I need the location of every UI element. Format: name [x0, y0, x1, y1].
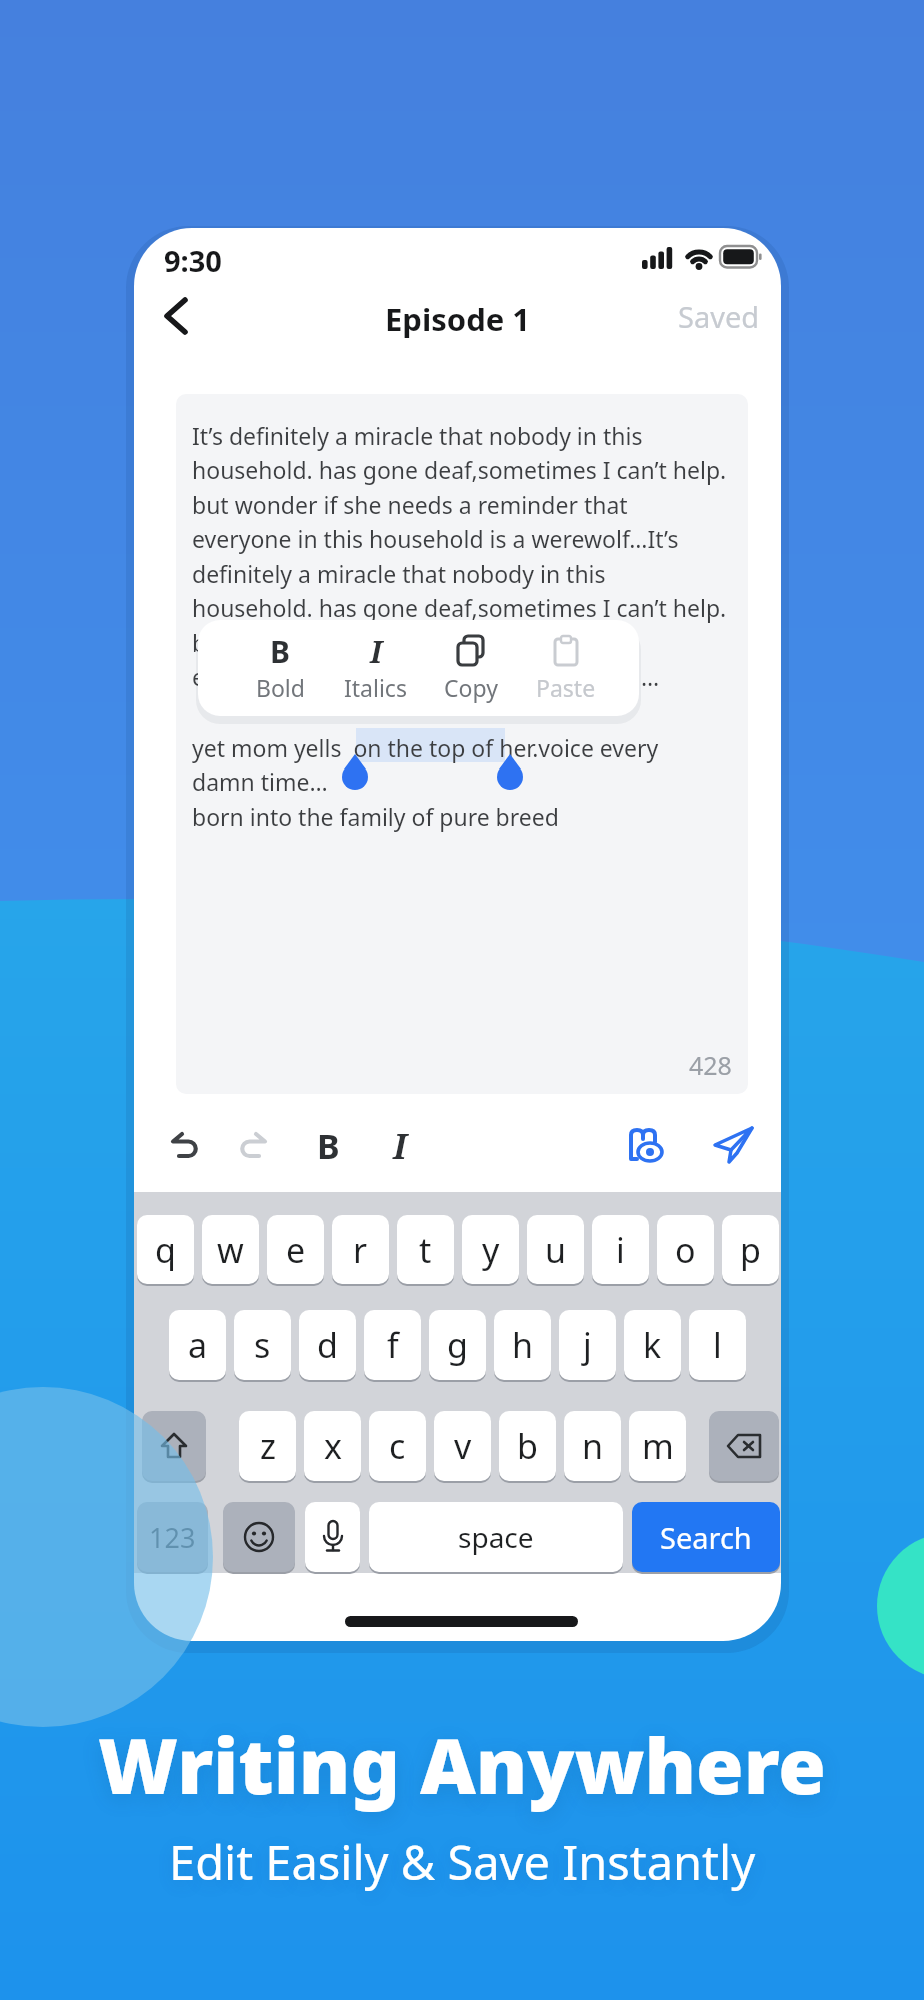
button[interactable]: l	[689, 1310, 746, 1380]
staticText: y	[482, 1227, 500, 1273]
staticText: a	[188, 1322, 208, 1368]
button[interactable]: Copy	[423, 630, 518, 716]
button[interactable]: Saved	[654, 294, 764, 338]
button[interactable]: h	[494, 1310, 551, 1380]
staticText: B	[317, 1123, 340, 1169]
button[interactable]	[223, 1502, 295, 1572]
staticText: Writing Anywhere	[98, 1712, 826, 1817]
button[interactable]: k	[624, 1310, 681, 1380]
button[interactable]: f	[364, 1310, 421, 1380]
button[interactable]: w	[202, 1215, 259, 1284]
staticText: o	[675, 1227, 696, 1273]
button[interactable]: g	[429, 1310, 486, 1380]
staticText: everyone in this household is a werewolf…	[192, 523, 679, 554]
button[interactable]	[229, 1120, 281, 1172]
button[interactable]: r	[332, 1215, 389, 1284]
staticText: u	[545, 1227, 567, 1273]
staticText: m	[642, 1423, 674, 1469]
staticText: B	[270, 631, 290, 672]
button[interactable]: B	[232, 630, 328, 716]
staticText: z	[260, 1423, 276, 1469]
staticText: Episode 1	[385, 298, 531, 340]
button[interactable]	[142, 1411, 206, 1481]
button[interactable]: v	[434, 1411, 491, 1481]
button[interactable]: o	[657, 1215, 714, 1284]
button[interactable]	[160, 1120, 212, 1172]
staticText: Paste	[536, 672, 596, 703]
staticText: 428	[689, 1048, 732, 1082]
staticText: l	[713, 1322, 722, 1368]
button[interactable]: i	[592, 1215, 649, 1284]
staticText: k	[643, 1322, 662, 1368]
button[interactable]: Search	[632, 1502, 780, 1572]
button[interactable]: I	[328, 630, 423, 716]
staticText: q	[155, 1227, 176, 1273]
button[interactable]: t	[397, 1215, 454, 1284]
staticText: household. has gone deaf,sometimes I can…	[192, 454, 727, 485]
staticText: b	[192, 627, 207, 658]
staticText: f	[387, 1322, 399, 1368]
staticText: 9:30	[164, 241, 222, 280]
button[interactable]: y	[462, 1215, 519, 1284]
staticText: Saved	[678, 297, 760, 336]
button[interactable]: I	[374, 1120, 426, 1172]
staticText: j	[583, 1322, 592, 1368]
button[interactable]: c	[369, 1411, 426, 1481]
button[interactable]: s	[234, 1310, 291, 1380]
staticText: household. has gone deaf,sometimes I can…	[192, 592, 727, 623]
button[interactable]: u	[527, 1215, 584, 1284]
staticText: e	[286, 1227, 306, 1273]
staticText: t	[419, 1227, 432, 1273]
staticText: g	[447, 1322, 468, 1368]
staticText: Bold	[256, 672, 305, 703]
button[interactable]: d	[299, 1310, 356, 1380]
staticText: damn time…	[192, 766, 328, 797]
button[interactable]: B	[302, 1120, 354, 1172]
staticText: h	[512, 1322, 534, 1368]
staticText: yet mom yells on the top of her.voice ev…	[192, 732, 659, 763]
button[interactable]: m	[629, 1411, 686, 1481]
staticText: n	[582, 1423, 604, 1469]
staticText: It’s definitely a miracle that nobody in…	[192, 420, 643, 451]
staticText: Edit Easily & Save Instantly	[169, 1830, 756, 1894]
staticText: w	[217, 1227, 244, 1273]
staticText: I	[393, 1123, 407, 1169]
staticText: e	[192, 661, 205, 692]
staticText: Copy	[444, 672, 498, 703]
button[interactable]: x	[304, 1411, 361, 1481]
button[interactable]	[706, 1118, 760, 1172]
staticText: v	[454, 1423, 472, 1469]
staticText: Search	[660, 1518, 752, 1557]
button[interactable]	[618, 1118, 672, 1172]
staticText: born into the family of pure breed	[192, 801, 559, 832]
staticText: Italics	[344, 672, 407, 703]
staticText: s	[254, 1322, 271, 1368]
button[interactable]: j	[559, 1310, 616, 1380]
button[interactable]: e	[267, 1215, 324, 1284]
staticText: …	[641, 661, 660, 692]
button[interactable]: 123	[137, 1502, 208, 1572]
button[interactable]: p	[722, 1215, 779, 1284]
staticText: c	[389, 1423, 406, 1469]
staticText: x	[324, 1423, 342, 1469]
button[interactable]: q	[137, 1215, 194, 1284]
staticText: but wonder if she needs a reminder that	[192, 489, 628, 520]
staticText: 123	[149, 1519, 196, 1556]
staticText: I	[370, 631, 383, 672]
button[interactable]: space	[369, 1502, 623, 1572]
staticText: i	[616, 1227, 625, 1273]
staticText: d	[317, 1322, 338, 1368]
button[interactable]: a	[169, 1310, 226, 1380]
button[interactable]: n	[564, 1411, 621, 1481]
button[interactable]: z	[239, 1411, 296, 1481]
button[interactable]	[305, 1502, 360, 1572]
staticText: r	[353, 1227, 368, 1273]
button[interactable]	[709, 1411, 779, 1481]
staticText: p	[740, 1227, 761, 1273]
staticText: b	[517, 1423, 538, 1469]
staticText: space	[458, 1518, 534, 1556]
button[interactable]: b	[499, 1411, 556, 1481]
button[interactable]	[154, 290, 206, 342]
button[interactable]: Paste	[518, 630, 613, 716]
staticText: definitely a miracle that nobody in this	[192, 558, 606, 589]
